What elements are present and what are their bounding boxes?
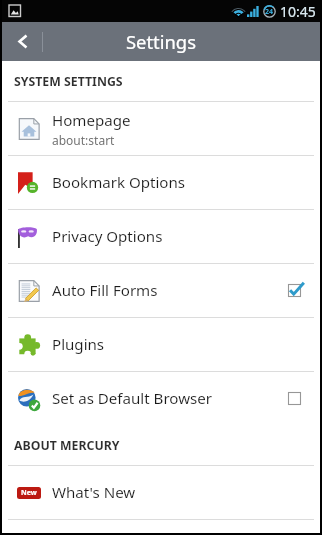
staticText: New	[21, 488, 37, 498]
staticText: SYSTEM SETTINGS	[14, 73, 123, 90]
button[interactable]: Bookmark Options	[2, 156, 320, 210]
staticText: Set as Default Browser	[52, 388, 212, 409]
button[interactable]: Privacy Options	[2, 210, 320, 264]
button[interactable]: Set as Default Browser	[2, 372, 320, 425]
staticText: about:start	[52, 132, 115, 148]
button[interactable]: Homepage	[2, 102, 320, 156]
button[interactable]: Back	[2, 22, 43, 61]
staticText: Bookmark Options	[52, 172, 186, 193]
staticText: Plugins	[52, 334, 105, 355]
staticText: ABOUT MERCURY	[14, 437, 120, 454]
staticText: What's New	[52, 482, 136, 503]
staticText: Privacy Options	[52, 226, 163, 247]
button[interactable]: Plugins	[2, 318, 320, 372]
staticText: 24	[265, 7, 274, 17]
staticText: 10:45	[280, 2, 316, 21]
staticText: Homepage	[52, 110, 131, 131]
staticText: Auto Fill Forms	[52, 280, 158, 301]
staticText: Settings	[126, 29, 196, 54]
button[interactable]: New	[2, 466, 320, 520]
button[interactable]: Auto Fill Forms	[2, 264, 320, 318]
